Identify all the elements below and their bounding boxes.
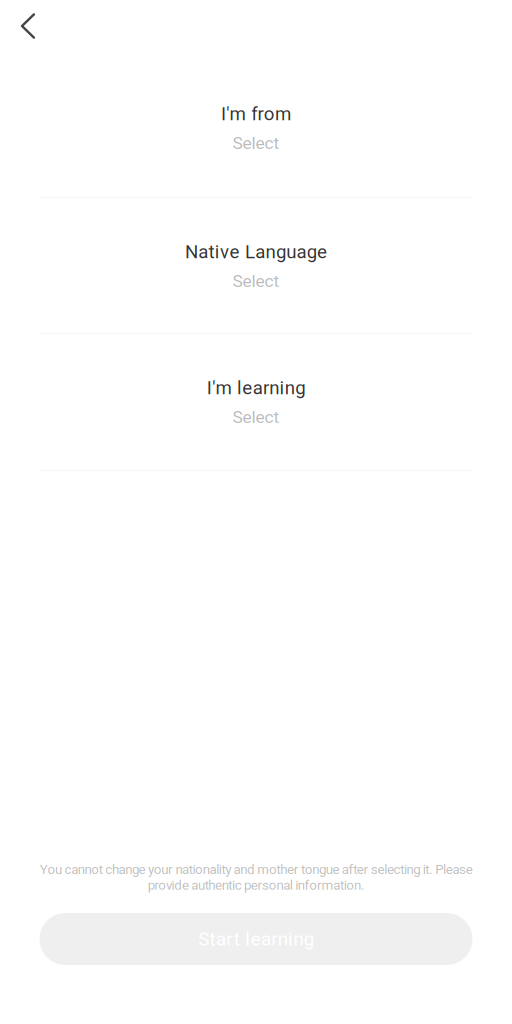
staticText: I'm learning xyxy=(207,377,305,399)
staticText: Select xyxy=(232,407,279,427)
staticText: I'm from xyxy=(221,103,291,125)
staticText: You cannot change your nationality and m… xyxy=(39,862,472,893)
button[interactable]: Start learning xyxy=(39,913,472,965)
staticText: Start learning xyxy=(198,928,314,950)
button[interactable]: I'm learning xyxy=(0,334,512,470)
staticText: Native Language xyxy=(185,241,327,263)
button[interactable]: Native Language xyxy=(0,198,512,333)
staticText: Select xyxy=(232,271,279,291)
button[interactable]: Back xyxy=(0,0,55,52)
button[interactable]: I'm from xyxy=(0,60,512,197)
staticText: Select xyxy=(232,133,279,153)
